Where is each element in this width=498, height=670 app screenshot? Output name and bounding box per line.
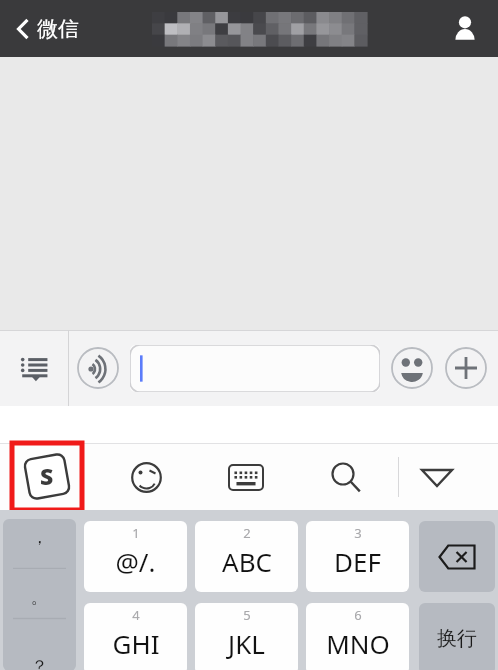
- staticText: 1: [132, 524, 140, 542]
- staticText: ABC: [222, 544, 272, 579]
- button[interactable]: Profile: [444, 7, 486, 50]
- staticText: JKL: [228, 626, 265, 661]
- staticText: 5: [243, 606, 251, 624]
- button[interactable]: 3: [306, 521, 409, 592]
- button[interactable]: 4: [84, 603, 187, 670]
- button[interactable]: Emoji: [388, 344, 436, 392]
- staticText: 换行: [437, 626, 477, 651]
- button[interactable]: 6: [306, 603, 409, 670]
- button[interactable]: Hide keyboard: [406, 446, 468, 508]
- button[interactable]: 1: [84, 521, 187, 592]
- button[interactable]: 换行: [419, 603, 495, 670]
- button[interactable]: Chat list: [0, 330, 68, 406]
- staticText: 微信: [37, 16, 79, 42]
- button[interactable]: Back: [10, 10, 85, 48]
- button[interactable]: ，: [3, 519, 76, 670]
- staticText: 3: [354, 524, 362, 542]
- button[interactable]: Voice input: [74, 344, 122, 392]
- staticText: ，: [31, 527, 48, 548]
- button[interactable]: 2: [195, 521, 298, 592]
- staticText: 2: [243, 524, 251, 542]
- staticText: 。: [31, 587, 48, 608]
- button[interactable]: [130, 345, 380, 392]
- button[interactable]: Sogou input method: [12, 443, 82, 510]
- staticText: MNO: [326, 626, 390, 661]
- staticText: 6: [354, 606, 362, 624]
- button[interactable]: 5: [195, 603, 298, 670]
- staticText: S: [40, 460, 54, 491]
- button[interactable]: Backspace: [419, 521, 495, 592]
- staticText: 4: [132, 606, 140, 624]
- button[interactable]: More: [442, 344, 490, 392]
- other: Back: [16, 17, 30, 41]
- staticText: ？: [31, 656, 48, 670]
- staticText: GHI: [112, 626, 160, 661]
- button[interactable]: Emoji: [115, 446, 177, 508]
- staticText: DEF: [334, 544, 381, 579]
- button[interactable]: Keyboard: [215, 446, 277, 508]
- button[interactable]: Search: [315, 446, 377, 508]
- staticText: @/.: [115, 544, 156, 579]
